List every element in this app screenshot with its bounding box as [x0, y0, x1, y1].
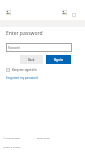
button[interactable]: Keep me signed in — [6, 68, 37, 72]
staticText: Keep me signed in — [12, 68, 37, 72]
staticText: Sign in — [54, 58, 64, 62]
staticText: Back — [28, 58, 35, 62]
staticText: © 2019 Microsoft — [3, 137, 21, 140]
button[interactable]: Terms of use — [37, 137, 50, 140]
button[interactable]: Password — [8, 43, 72, 52]
button[interactable]: Forgotten my password — [6, 76, 38, 80]
button[interactable]: Back — [20, 55, 43, 64]
staticText: Password — [8, 46, 20, 49]
button[interactable]: Microsoft — [6, 10, 11, 15]
button[interactable]: Privacy & Cookies — [3, 146, 21, 149]
staticText: Enter password — [6, 30, 43, 37]
button[interactable]: Sign in — [46, 55, 71, 64]
